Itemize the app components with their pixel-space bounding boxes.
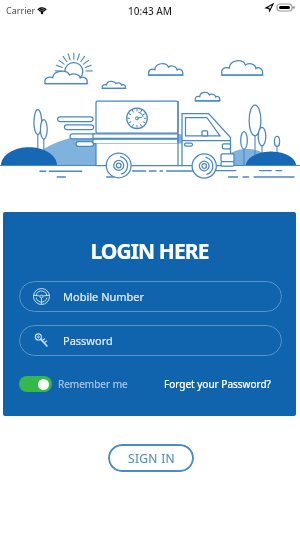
button[interactable]: Mobile Number xyxy=(19,281,282,312)
button[interactable]: Remember me xyxy=(19,376,128,392)
staticText: LOGIN HERE xyxy=(3,237,296,266)
staticText: SIGN IN xyxy=(128,450,175,466)
button[interactable]: Forget your Password? xyxy=(164,377,271,391)
staticText: Mobile Number xyxy=(63,289,145,304)
button[interactable]: SIGN IN xyxy=(108,444,194,472)
other: Location xyxy=(266,4,273,11)
staticText: Password xyxy=(63,333,113,348)
staticText: Remember me xyxy=(58,377,128,391)
button[interactable]: Password xyxy=(19,325,282,356)
staticText: Carrier xyxy=(6,4,36,16)
staticText: 10:43 AM xyxy=(128,4,172,18)
